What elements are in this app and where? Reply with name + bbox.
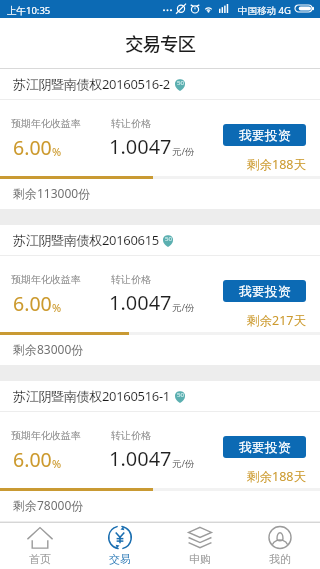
- staticText: 交易: [109, 552, 131, 566]
- staticText: 苏江阴暨南债权20160516-1: [13, 387, 171, 405]
- staticText: 预期年化收益率: [11, 429, 81, 442]
- staticText: 中国移动 4G: [238, 4, 291, 17]
- button[interactable]: 我要投资: [223, 124, 306, 146]
- button[interactable]: 我要投资: [223, 280, 306, 302]
- staticText: 剩余188天: [247, 468, 306, 485]
- staticText: 6.00: [13, 446, 52, 473]
- staticText: 1.0047: [109, 133, 172, 160]
- staticText: 剩余217天: [247, 312, 306, 329]
- staticText: 我要投资: [239, 439, 291, 455]
- staticText: 苏江阴暨南债权20160516-2: [13, 75, 171, 93]
- staticText: 50: [165, 235, 172, 243]
- staticText: 50: [177, 79, 184, 87]
- staticText: 剩余78000份: [13, 497, 84, 513]
- staticText: 转让价格: [111, 273, 151, 286]
- staticText: 预期年化收益率: [11, 117, 81, 130]
- staticText: 转让价格: [111, 429, 151, 442]
- staticText: 转让价格: [111, 117, 151, 130]
- staticText: %: [52, 456, 62, 471]
- staticText: 元/份: [172, 145, 195, 158]
- staticText: 元/份: [172, 301, 195, 314]
- staticText: 50: [177, 391, 184, 399]
- staticText: 1.0047: [109, 445, 172, 472]
- staticText: 元/份: [172, 457, 195, 470]
- staticText: 剩余83000份: [13, 341, 84, 357]
- staticText: %: [52, 300, 62, 315]
- staticText: 交易专区: [125, 30, 196, 57]
- staticText: 预期年化收益率: [11, 273, 81, 286]
- staticText: 首页: [29, 552, 51, 566]
- button[interactable]: 我的: [240, 523, 320, 569]
- button[interactable]: 我要投资: [223, 436, 306, 458]
- staticText: 我的: [269, 552, 291, 566]
- staticText: 剩余188天: [247, 156, 306, 173]
- button[interactable]: 申购: [160, 523, 240, 569]
- staticText: 6.00: [13, 290, 52, 317]
- staticText: 1.0047: [109, 289, 172, 316]
- staticText: 我要投资: [239, 127, 291, 143]
- staticText: 我要投资: [239, 283, 291, 299]
- staticText: 苏江阴暨南债权20160615: [13, 231, 159, 249]
- button[interactable]: 首页: [0, 523, 80, 569]
- staticText: %: [52, 144, 62, 159]
- staticText: 剩余113000份: [13, 185, 91, 201]
- staticText: 上午10:35: [7, 4, 51, 17]
- staticText: 申购: [189, 552, 211, 566]
- button[interactable]: 交易: [80, 523, 160, 569]
- staticText: 6.00: [13, 134, 52, 161]
